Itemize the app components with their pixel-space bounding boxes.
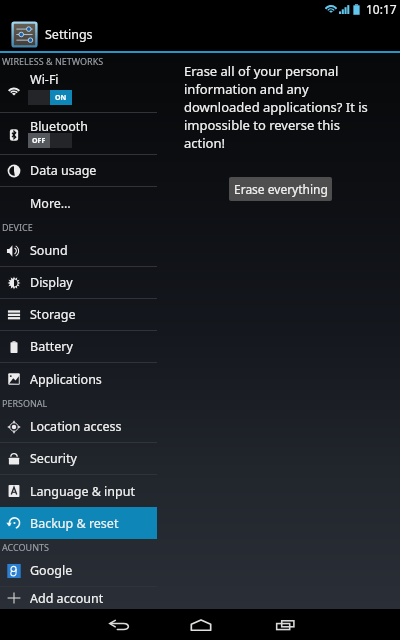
staticText: Erase all of your personal information a… <box>184 62 369 152</box>
staticText: Wi-Fi <box>30 71 59 88</box>
button[interactable]: Data usage <box>0 155 157 186</box>
staticText: Applications <box>30 371 102 388</box>
staticText: Settings <box>45 26 93 43</box>
staticText: Bluetooth <box>30 118 89 135</box>
button[interactable]: Recent apps <box>257 609 313 640</box>
staticText: ON <box>55 93 67 103</box>
staticText: OFF <box>32 136 46 146</box>
staticText: DEVICE <box>2 221 33 233</box>
button[interactable]: Add account <box>0 587 157 609</box>
staticText: Erase everything <box>234 181 328 197</box>
button[interactable]: Google <box>0 555 157 586</box>
button[interactable]: ON <box>28 90 72 105</box>
button[interactable]: Security <box>0 443 157 474</box>
staticText: WIRELESS & NETWORKS <box>2 55 104 67</box>
button[interactable]: Erase everything <box>229 177 332 201</box>
button[interactable]: Backup & reset <box>0 507 157 539</box>
button[interactable]: Battery <box>0 331 157 362</box>
staticText: More… <box>30 195 71 212</box>
staticText: Battery <box>30 338 73 355</box>
staticText: ACCOUNTS <box>2 541 49 553</box>
button[interactable]: Language & input <box>0 475 157 507</box>
staticText: Sound <box>30 242 68 259</box>
button[interactable]: Bluetooth <box>0 113 157 154</box>
staticText: PERSONAL <box>2 397 48 409</box>
button[interactable]: Back <box>90 609 146 640</box>
staticText: Data usage <box>30 162 97 179</box>
button[interactable]: Wi-Fi <box>0 68 157 112</box>
staticText: 10:17 <box>366 1 397 17</box>
staticText: Security <box>30 450 77 467</box>
staticText: Display <box>30 274 73 291</box>
staticText: Storage <box>30 306 76 323</box>
button[interactable]: OFF <box>28 133 72 148</box>
button[interactable]: Applications <box>0 363 157 395</box>
staticText: Language & input <box>30 483 135 500</box>
staticText: Add account <box>30 590 104 607</box>
staticText: Location access <box>30 418 122 435</box>
button[interactable]: Location access <box>0 411 157 442</box>
button[interactable]: Sound <box>0 235 157 266</box>
button[interactable]: Home <box>173 609 229 640</box>
staticText: Backup & reset <box>30 515 119 532</box>
staticText: Google <box>30 562 73 579</box>
button[interactable]: More… <box>0 187 157 219</box>
button[interactable]: Storage <box>0 299 157 330</box>
button[interactable]: Display <box>0 267 157 298</box>
